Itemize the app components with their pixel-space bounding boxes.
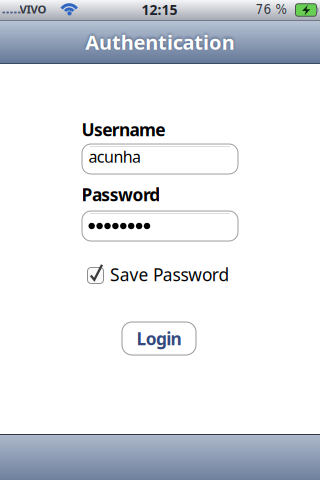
staticText: acunha: [88, 146, 141, 167]
staticText: Username: [81, 118, 165, 141]
staticText: Password: [81, 183, 160, 206]
staticText: 76 %: [255, 2, 286, 17]
button[interactable]: Password text field: [82, 211, 238, 241]
staticText: Save Password: [110, 263, 230, 286]
button[interactable]: Username text field: [82, 144, 238, 174]
button[interactable]: Save Password: [87, 263, 277, 286]
button[interactable]: Login: [122, 322, 196, 355]
staticText: VIVO: [19, 1, 46, 17]
staticText: 12:15: [141, 0, 177, 19]
staticText: Authentication: [85, 29, 235, 55]
staticText: Login: [136, 327, 182, 350]
